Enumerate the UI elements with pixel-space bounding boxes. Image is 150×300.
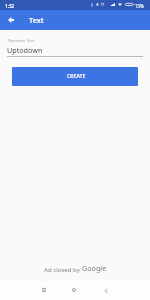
button[interactable]: Recent apps: [32, 280, 56, 299]
staticText: Random Text: [8, 37, 35, 43]
staticText: Ad closed by: [44, 265, 82, 273]
staticText: CREATE: [67, 72, 86, 79]
button[interactable]: Home: [62, 280, 86, 299]
button[interactable]: CREATE: [12, 67, 138, 86]
button[interactable]: Back: [94, 281, 118, 300]
staticText: Text: [29, 15, 44, 25]
staticText: 1:32: [5, 3, 15, 9]
staticText: Google: [82, 263, 107, 273]
button[interactable]: Back: [1, 10, 21, 30]
staticText: 15%: [135, 3, 144, 9]
staticText: Uptodown: [7, 45, 43, 55]
